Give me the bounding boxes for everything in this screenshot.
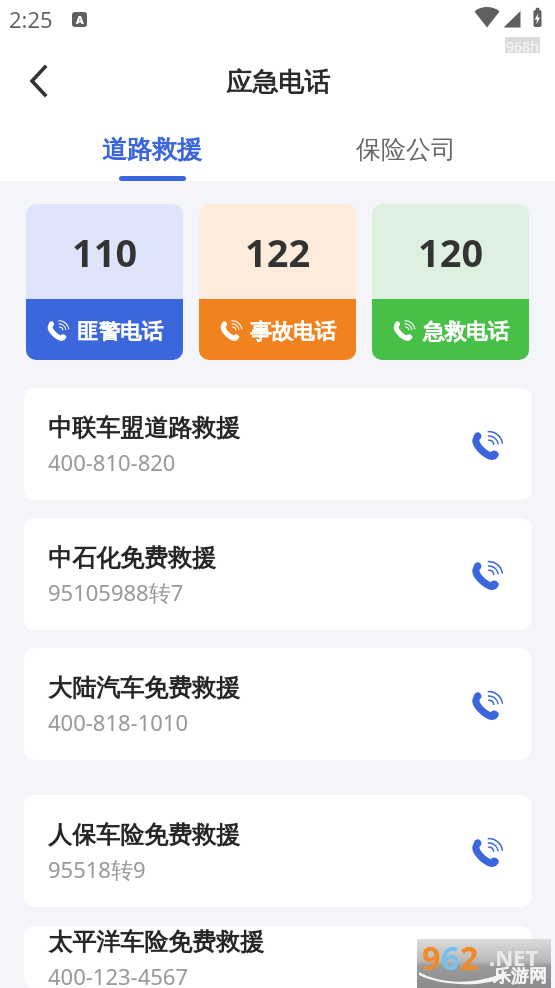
button[interactable]: 人保车险免费救援 — [24, 795, 531, 907]
staticText: 2 — [460, 936, 479, 980]
button[interactable]: 道路救援 — [52, 122, 252, 181]
button[interactable]: Call — [451, 926, 531, 988]
staticText: 乐游网 — [493, 965, 547, 988]
staticText: 122 — [245, 226, 311, 278]
button[interactable]: 太平洋车险免费救援 — [24, 926, 531, 988]
staticText: 6 — [441, 936, 460, 980]
staticText: 9 — [422, 936, 441, 980]
button[interactable]: 110 — [26, 204, 183, 360]
staticText: 大陆汽车免费救援 — [48, 673, 240, 703]
button[interactable]: 大陆汽车免费救援 — [24, 648, 531, 760]
staticText: 人保车险免费救援 — [48, 820, 240, 850]
staticText: 中石化免费救援 — [48, 543, 216, 573]
staticText: 95518转9 — [48, 854, 146, 884]
staticText: 中联车盟道路救援 — [48, 413, 240, 443]
staticText: 太平洋车险免费救援 — [48, 927, 264, 957]
button[interactable]: Back — [10, 53, 66, 109]
staticText: 急救电话 — [423, 318, 509, 345]
button[interactable]: 中联车盟道路救援 — [24, 388, 531, 500]
button[interactable]: 120 — [372, 204, 529, 360]
staticText: 道路救援 — [102, 134, 202, 165]
button[interactable]: 保险公司 — [306, 122, 506, 176]
button[interactable]: 122 — [199, 204, 356, 360]
staticText: 110 — [72, 226, 138, 278]
staticText: 匪警电话 — [77, 318, 163, 345]
staticText: 968h — [506, 37, 539, 53]
staticText: 400-123-4567 — [48, 961, 189, 988]
staticText: A — [76, 12, 84, 27]
button[interactable]: Call — [451, 388, 531, 500]
button[interactable]: 中石化免费救援 — [24, 518, 531, 630]
staticText: 95105988转7 — [48, 577, 184, 607]
button[interactable]: Call — [451, 795, 531, 907]
staticText: 400-818-1010 — [48, 707, 189, 737]
staticText: 事故电话 — [250, 318, 336, 345]
staticText: .NET — [489, 942, 539, 972]
staticText: 2:25 — [9, 4, 53, 34]
staticText: 应急电话 — [226, 66, 330, 99]
button[interactable]: Call — [451, 648, 531, 760]
staticText: 120 — [418, 226, 484, 278]
button[interactable]: Call — [451, 518, 531, 630]
staticText: 保险公司 — [356, 134, 456, 165]
staticText: 400-810-820 — [48, 447, 176, 477]
